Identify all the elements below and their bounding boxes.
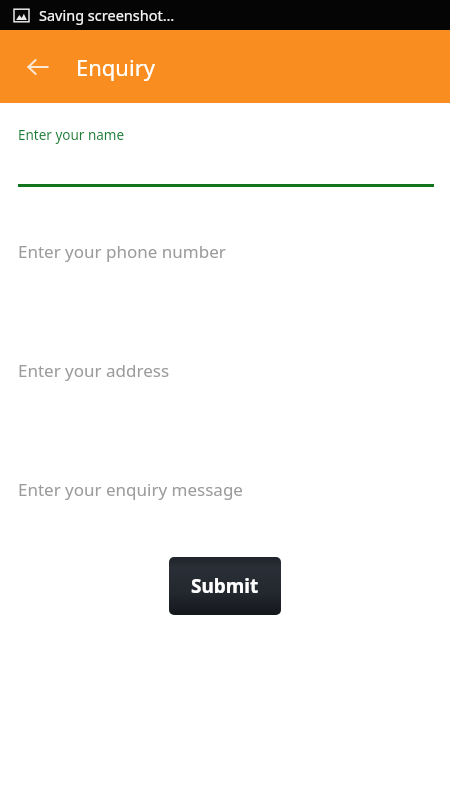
staticText: Enter your enquiry message (18, 478, 243, 501)
staticText: Enquiry (76, 52, 155, 82)
button[interactable]: Back (16, 45, 60, 89)
staticText: Enter your address (18, 359, 170, 382)
button[interactable]: Enter your phone number (0, 238, 450, 264)
staticText: Enter your name (18, 126, 125, 144)
button[interactable]: Submit (169, 557, 281, 615)
staticText: Saving screenshot… (39, 5, 175, 25)
button[interactable]: Enter your address (0, 357, 450, 383)
button[interactable]: Enter your enquiry message (0, 476, 450, 502)
button[interactable]: Enter your name (0, 126, 450, 188)
staticText: Enter your phone number (18, 240, 226, 263)
staticText: Submit (191, 573, 259, 599)
